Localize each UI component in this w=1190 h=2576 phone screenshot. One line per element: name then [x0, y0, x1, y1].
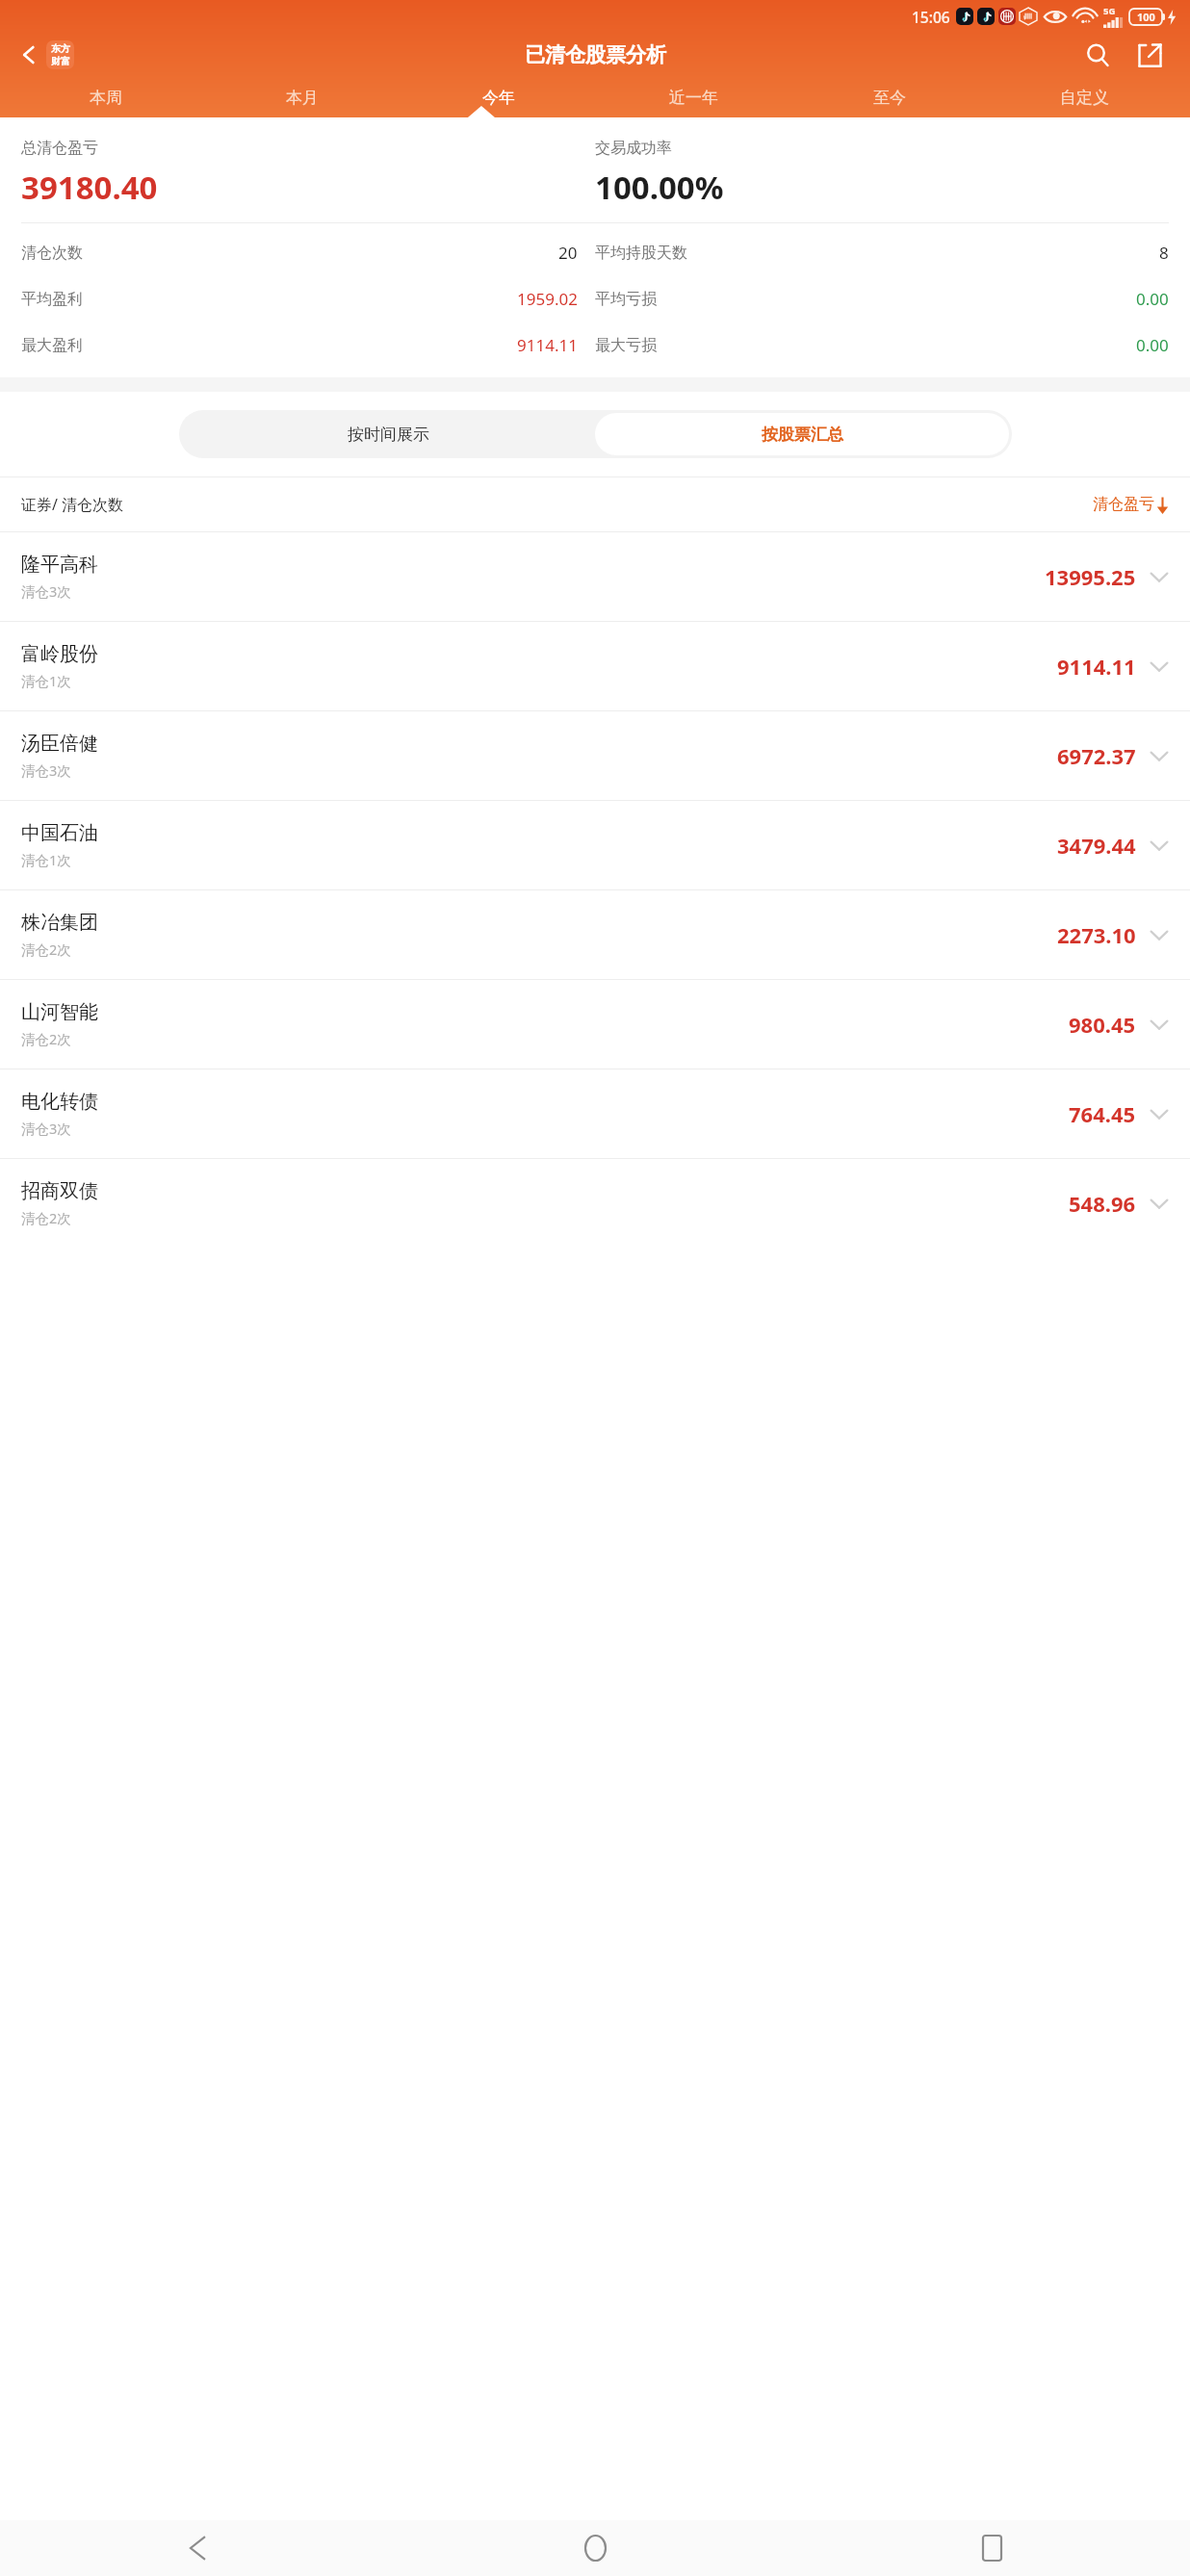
staticText: 证券/ 清仓次数	[21, 494, 124, 515]
staticText: 最大亏损	[595, 336, 657, 355]
staticText: 清仓1次	[21, 671, 71, 690]
staticText: 100.00%	[595, 166, 724, 209]
staticText: 按时间展示	[348, 425, 429, 445]
staticText: 自定义	[1060, 88, 1109, 108]
button[interactable]: 至今	[791, 77, 987, 117]
staticText: 交易成功率	[595, 139, 672, 158]
staticText: 电化转债	[21, 1090, 98, 1114]
staticText: 株冶集团	[21, 911, 98, 935]
staticText: 中国石油	[21, 821, 98, 845]
staticText: 最大盈利	[21, 336, 83, 355]
staticText: 隆平高科	[21, 553, 98, 577]
staticText: 2273.10	[1057, 920, 1136, 949]
staticText: 本周	[90, 88, 122, 108]
staticText: 招商双债	[21, 1179, 98, 1203]
staticText: 按股票汇总	[762, 425, 843, 445]
button[interactable]: 按时间展示	[182, 413, 595, 455]
staticText: 富岭股份	[21, 642, 98, 666]
staticText: 平均持股天数	[595, 244, 687, 263]
button[interactable]: 招商双债	[0, 1159, 1190, 1248]
staticText: 汤臣倍健	[21, 732, 98, 756]
button[interactable]: Recent apps	[793, 2520, 1190, 2576]
staticText: 0.00	[1136, 334, 1169, 356]
button[interactable]: 中国石油	[0, 801, 1190, 889]
button[interactable]: 自定义	[987, 77, 1182, 117]
staticText: 15:06	[912, 7, 950, 27]
button[interactable]: Back	[0, 2520, 397, 2576]
staticText: 近一年	[669, 88, 718, 108]
staticText: 8	[1159, 242, 1169, 264]
staticText: 至今	[873, 88, 906, 108]
staticText: 9114.11	[517, 334, 578, 356]
staticText: 清仓盈亏	[1093, 495, 1154, 514]
staticText: 清仓3次	[21, 760, 71, 780]
staticText: 0.00	[1136, 288, 1169, 310]
staticText: 山河智能	[21, 1000, 98, 1024]
staticText: 清仓3次	[21, 581, 71, 601]
button[interactable]: 隆平高科	[0, 532, 1190, 621]
button[interactable]: 汤臣倍健	[0, 711, 1190, 800]
staticText: 9114.11	[1057, 652, 1136, 681]
staticText: 已清仓股票分析	[525, 42, 666, 67]
staticText: 平均亏损	[595, 290, 657, 309]
button[interactable]: Back	[13, 37, 80, 73]
button[interactable]: 本周	[8, 77, 204, 117]
button[interactable]: 山河智能	[0, 980, 1190, 1069]
other: Back	[19, 45, 39, 64]
staticText: 20	[558, 242, 578, 264]
staticText: 清仓2次	[21, 940, 71, 959]
button[interactable]: 电化转债	[0, 1069, 1190, 1158]
staticText: 1959.02	[517, 288, 578, 310]
staticText: 清仓次数	[21, 244, 83, 263]
button[interactable]: 按股票汇总	[595, 413, 1009, 455]
staticText: 100	[1137, 10, 1155, 24]
button[interactable]: 今年	[401, 77, 596, 117]
staticText: 3479.44	[1057, 831, 1136, 860]
staticText: 6972.37	[1057, 741, 1136, 770]
staticText: 本月	[286, 88, 319, 108]
staticText: 财富	[51, 55, 70, 67]
staticText: 5G	[1103, 5, 1116, 17]
staticText: 平均盈利	[21, 290, 83, 309]
staticText: 13995.25	[1045, 562, 1136, 591]
button[interactable]: Share	[1130, 36, 1169, 74]
staticText: 清仓2次	[21, 1029, 71, 1048]
staticText: 今年	[482, 88, 515, 108]
button[interactable]: 近一年	[596, 77, 791, 117]
staticText: 39180.40	[21, 166, 158, 209]
button[interactable]: Home	[397, 2520, 793, 2576]
staticText: 548.96	[1069, 1189, 1136, 1218]
button[interactable]: 富岭股份	[0, 622, 1190, 710]
staticText: 清仓1次	[21, 850, 71, 869]
staticText: 总清仓盈亏	[21, 139, 98, 158]
staticText: 764.45	[1069, 1099, 1136, 1128]
staticText: 清仓2次	[21, 1208, 71, 1227]
staticText: 东方	[51, 42, 70, 55]
button[interactable]: Search	[1078, 36, 1117, 74]
button[interactable]: 清仓盈亏	[1093, 495, 1169, 514]
staticText: 980.45	[1069, 1010, 1136, 1039]
staticText: 清仓3次	[21, 1119, 71, 1138]
button[interactable]: 株冶集团	[0, 890, 1190, 979]
button[interactable]: 本月	[204, 77, 401, 117]
